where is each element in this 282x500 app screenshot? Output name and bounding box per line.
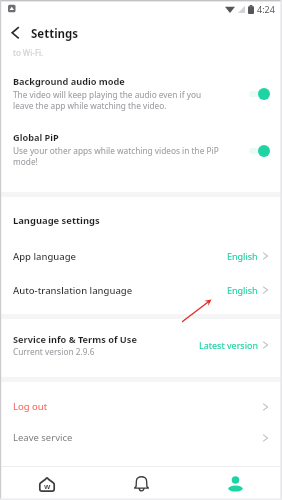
button[interactable]: Toggle [248,87,272,101]
button[interactable]: Global PiP [0,124,282,174]
button[interactable]: App language [0,239,282,273]
staticText: Language settings [13,214,100,227]
button[interactable]: Auto-translation language [0,273,282,307]
staticText: The video will keep playing the audio ev… [13,89,202,111]
staticText: Settings [31,26,79,42]
button[interactable]: Toggle [248,144,272,158]
staticText: Global PiP [13,131,59,144]
staticText: Background audio mode [13,75,125,88]
button[interactable]: Back [2,19,28,45]
staticText: to Wi-Fi. [13,47,44,58]
staticText: Log out [13,400,262,413]
staticText: Leave service [13,431,262,444]
staticText: 4:24 [257,3,275,15]
staticText: w [44,481,51,491]
staticText: English [227,250,258,262]
staticText: App language [13,250,227,263]
staticText: Use your other apps while watching video… [13,145,219,167]
button[interactable]: Profile [188,467,282,500]
button[interactable]: Service info & Terms of Use [0,326,282,364]
staticText: Auto-translation language [13,284,227,297]
button[interactable]: Leave service [0,422,282,453]
button[interactable]: Background audio mode [0,66,282,116]
staticText: Latest version [199,339,258,351]
staticText: Current version 2.9.6 [13,346,95,357]
staticText: English [227,284,258,296]
staticText: Service info & Terms of Use [13,333,137,346]
button[interactable]: Home [0,467,94,500]
button[interactable]: Notifications [94,467,188,500]
button[interactable]: Log out [0,391,282,422]
